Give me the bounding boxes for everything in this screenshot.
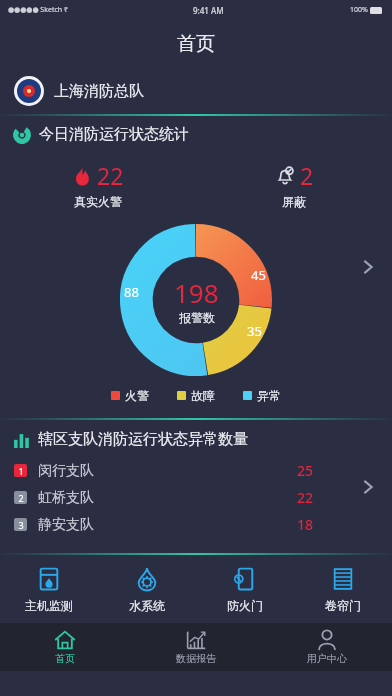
staticText: 22 [297, 488, 314, 507]
staticText: 静安支队 [38, 516, 94, 534]
staticText: 1 [18, 465, 24, 477]
staticText: 卷帘门 [325, 598, 361, 613]
staticText: 数据报告 [176, 652, 216, 665]
staticText: 上海消防总队 [54, 82, 144, 101]
staticText: 屏蔽 [282, 194, 306, 209]
button[interactable]: 用户中心 [261, 623, 392, 671]
button[interactable]: 异常 [243, 388, 281, 403]
staticText: 报警数 [179, 310, 215, 325]
staticText: 100% [350, 5, 368, 15]
button[interactable]: 火警 [111, 388, 149, 403]
button[interactable]: 查看排名详情 [352, 471, 384, 503]
button[interactable]: 首页 [0, 623, 130, 671]
staticText: 198 [174, 275, 219, 310]
staticText: 18 [297, 515, 314, 534]
staticText: 9:41 AM [193, 5, 224, 16]
button[interactable]: 故障 [177, 388, 215, 403]
button[interactable]: 2 [0, 484, 392, 511]
button[interactable]: 上海消防总队 [0, 68, 392, 114]
button[interactable]: 22 [0, 160, 196, 209]
button[interactable]: 1 [0, 457, 392, 484]
staticText: 3 [18, 519, 24, 531]
staticText: 火警 [125, 388, 149, 403]
staticText: 辖区支队消防运行状态异常数量 [38, 430, 248, 449]
staticText: 故障 [191, 388, 215, 403]
staticText: 22 [97, 160, 124, 191]
staticText: 主机监测 [25, 598, 73, 613]
button[interactable]: 主机监测 [0, 555, 98, 623]
staticText: 2 [300, 160, 314, 191]
staticText: 虹桥支队 [38, 489, 94, 507]
staticText: 用户中心 [307, 652, 347, 665]
button[interactable]: 2 [196, 160, 392, 209]
staticText: 2 [18, 492, 24, 504]
staticText: 异常 [257, 388, 281, 403]
staticText: 首页 [55, 652, 75, 665]
staticText: 35 [247, 322, 262, 340]
staticText: ●●●●● Sketch ₹ [8, 5, 68, 15]
staticText: 88 [124, 283, 139, 301]
button[interactable]: 查看详情 [352, 251, 384, 283]
staticText: 45 [251, 266, 266, 284]
staticText: 真实火警 [74, 194, 122, 209]
button[interactable]: 水系统 [98, 555, 196, 623]
staticText: 25 [297, 461, 314, 480]
button[interactable]: 防火门 [196, 555, 294, 623]
staticText: 今日消防运行状态统计 [39, 125, 189, 144]
button[interactable]: 数据报告 [130, 623, 261, 671]
button[interactable]: 3 [0, 511, 392, 538]
button[interactable]: 卷帘门 [294, 555, 392, 623]
staticText: 水系统 [129, 598, 165, 613]
staticText: 闵行支队 [38, 462, 94, 480]
staticText: 防火门 [227, 598, 263, 613]
staticText: 首页 [177, 32, 215, 56]
